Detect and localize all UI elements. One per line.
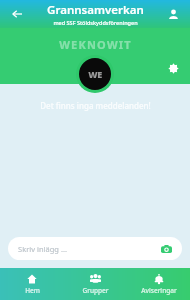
- staticText: Det finns inga meddelanden!: [40, 100, 151, 111]
- button[interactable]: Profile: [162, 3, 184, 25]
- button[interactable]: Hem: [0, 271, 64, 298]
- staticText: Skriv inlägg ...: [18, 244, 67, 254]
- button[interactable]: Grupper: [64, 270, 127, 298]
- button[interactable]: Back: [6, 3, 28, 25]
- staticText: Aviseringar: [141, 286, 177, 295]
- staticText: med SSF Stöldskyddsföreningen: [53, 19, 138, 26]
- button[interactable]: Settings: [163, 58, 183, 78]
- staticText: Grupper: [82, 286, 109, 295]
- button[interactable]: WE: [76, 55, 114, 93]
- button[interactable]: Skriv inlägg ...: [8, 237, 182, 260]
- staticText: WE: [88, 68, 102, 80]
- button[interactable]: Aviseringar: [127, 271, 190, 298]
- staticText: Hem: [25, 286, 40, 295]
- staticText: Grannsamverkan: [47, 2, 144, 18]
- button[interactable]: Add photo: [160, 243, 172, 255]
- staticText: WEKNOWIT: [59, 37, 132, 52]
